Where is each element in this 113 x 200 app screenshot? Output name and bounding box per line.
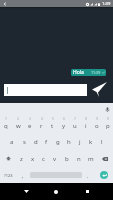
staticText: y — [62, 122, 66, 130]
button[interactable]: 6 — [58, 116, 69, 133]
staticText: x — [31, 155, 35, 163]
button[interactable]: 4 — [36, 116, 47, 133]
button[interactable]: , — [16, 167, 30, 183]
button[interactable]: Hola — [71, 69, 106, 76]
staticText: b — [65, 155, 69, 163]
staticText: u — [73, 122, 77, 130]
button[interactable]: x — [27, 150, 38, 167]
button[interactable]: n — [73, 150, 85, 167]
button[interactable]: Shift — [0, 150, 16, 167]
button[interactable]: g — [52, 133, 63, 150]
button[interactable]: Recents — [72, 183, 102, 200]
staticText: s — [23, 138, 26, 146]
staticText: d — [34, 138, 38, 146]
button[interactable]: 2 — [12, 116, 24, 133]
staticText: 2 — [17, 116, 19, 121]
staticText: Hola — [73, 69, 84, 76]
button[interactable]: l — [96, 133, 107, 150]
staticText: 1 — [5, 116, 7, 121]
staticText: 9 — [96, 116, 98, 121]
staticText: , — [22, 172, 24, 179]
button[interactable]: z — [16, 150, 27, 167]
button[interactable]: s — [18, 133, 30, 150]
button[interactable]: Voice input — [101, 103, 113, 116]
button[interactable]: j — [74, 133, 85, 150]
staticText: z — [20, 155, 23, 163]
staticText: t — [51, 122, 54, 130]
staticText: j — [79, 138, 81, 146]
button[interactable]: f — [41, 133, 52, 150]
staticText: c — [42, 155, 45, 163]
staticText: v — [53, 155, 57, 163]
button[interactable]: Backspace — [97, 150, 113, 167]
staticText: e — [28, 122, 32, 130]
staticText: l — [101, 138, 103, 146]
button[interactable]: m — [85, 150, 97, 167]
button[interactable]: k — [85, 133, 96, 150]
button[interactable]: Enter — [100, 171, 108, 179]
staticText: r — [40, 122, 43, 130]
staticText: p — [106, 122, 110, 130]
staticText: 1:39 — [102, 1, 111, 7]
staticText: 6 — [63, 116, 65, 121]
button[interactable]: Back — [11, 183, 41, 200]
button[interactable]: 1 — [0, 116, 12, 133]
staticText: 5 — [52, 116, 54, 121]
button[interactable]: c — [38, 150, 49, 167]
staticText: w — [16, 122, 21, 130]
button[interactable]: h — [63, 133, 74, 150]
button[interactable] — [4, 84, 87, 96]
button[interactable]: Back — [0, 0, 9, 7]
staticText: 8 — [85, 116, 87, 121]
staticText: 4 — [41, 116, 43, 121]
button[interactable]: v — [49, 150, 61, 167]
staticText: f — [45, 138, 48, 146]
staticText: a — [10, 138, 14, 146]
button[interactable]: ?123 — [0, 167, 16, 183]
button[interactable]: 5 — [47, 116, 58, 133]
staticText: 7 — [74, 116, 76, 121]
staticText: m — [88, 155, 94, 163]
button[interactable]: 3 — [24, 116, 36, 133]
button[interactable]: . — [82, 167, 94, 183]
staticText: i — [85, 122, 87, 130]
button[interactable]: 7 — [69, 116, 80, 133]
staticText: . — [87, 172, 89, 179]
staticText: o — [95, 122, 99, 130]
staticText: h — [67, 138, 71, 146]
button[interactable]: a — [6, 133, 18, 150]
button[interactable]: 0 — [102, 116, 113, 133]
staticText: q — [4, 122, 8, 130]
button[interactable]: Send — [88, 78, 113, 100]
staticText: g — [56, 138, 60, 146]
staticText: n — [77, 155, 81, 163]
button[interactable]: Home — [41, 183, 71, 200]
staticText: 11:39 — [91, 70, 101, 75]
button[interactable]: 9 — [91, 116, 102, 133]
button[interactable]: 8 — [80, 116, 91, 133]
button[interactable]: b — [61, 150, 73, 167]
staticText: 3 — [29, 116, 31, 121]
button[interactable]: d — [30, 133, 41, 150]
staticText: 0 — [107, 116, 109, 121]
staticText: k — [89, 138, 93, 146]
staticText: ?123 — [4, 173, 13, 178]
